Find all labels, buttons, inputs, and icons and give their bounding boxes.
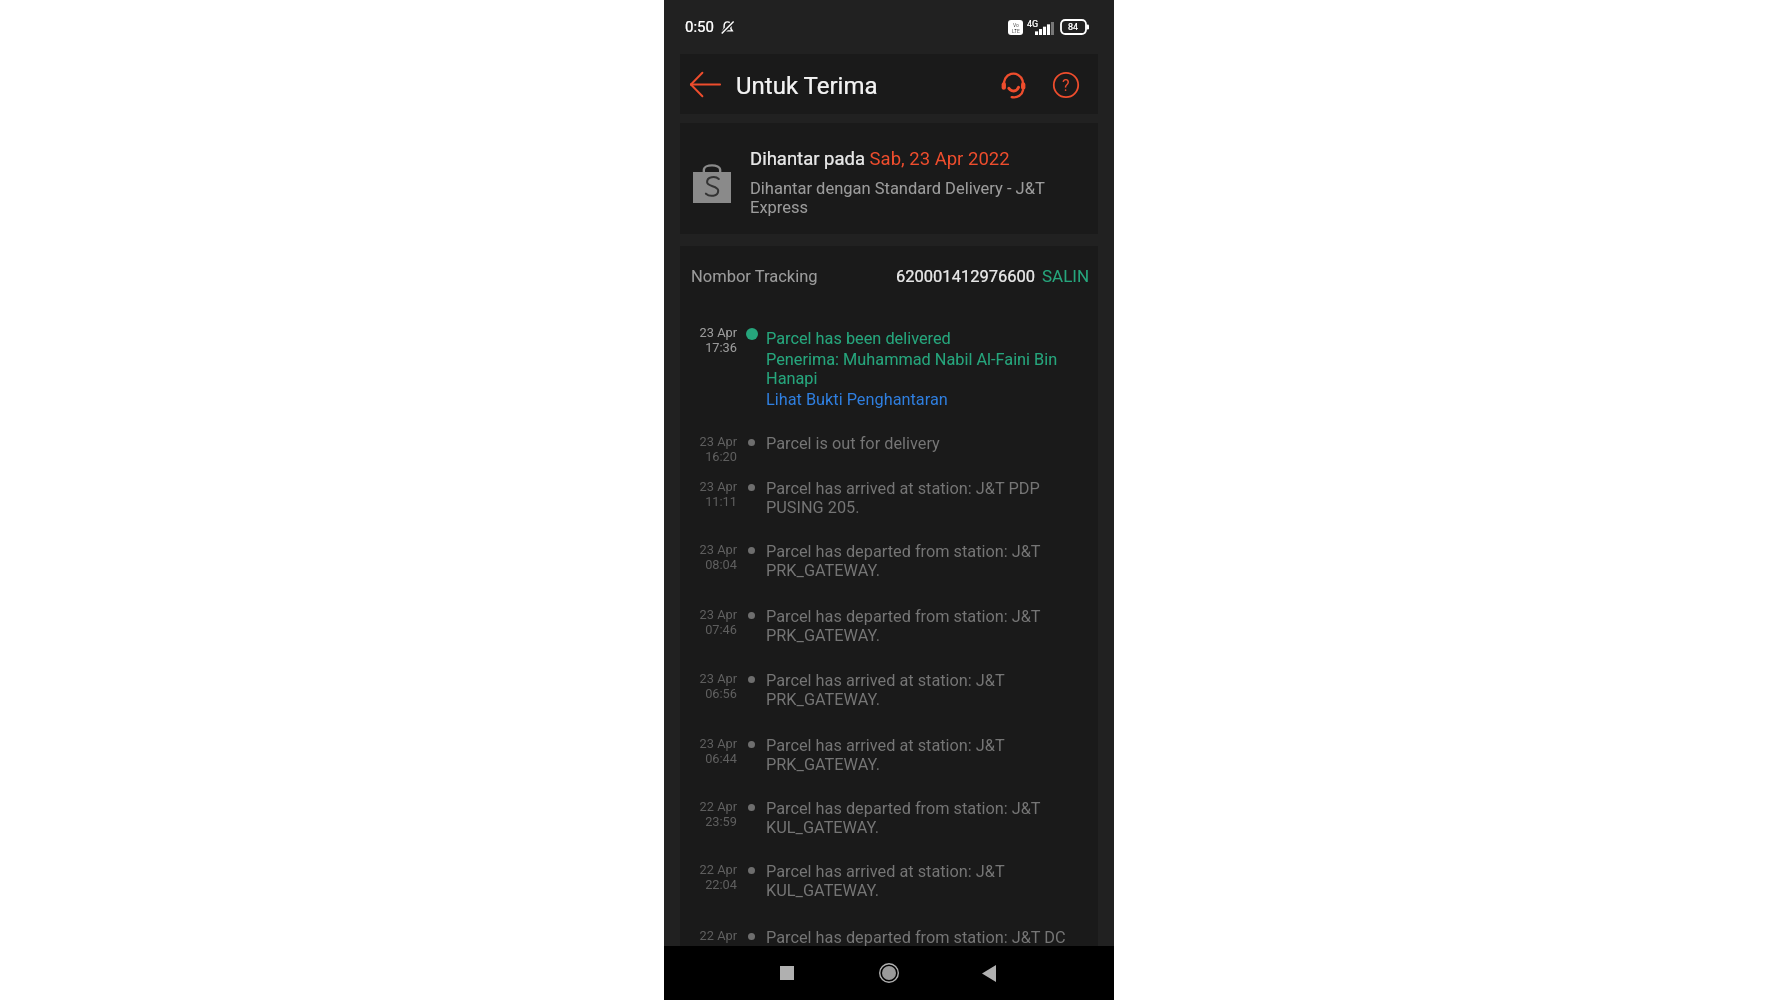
staticText: 22 Apr: [699, 862, 737, 877]
staticText: 11:11: [705, 494, 737, 509]
staticText: 23 Apr: [699, 479, 737, 494]
staticText: Dihantar dengan Standard Delivery - J&T …: [750, 179, 1092, 217]
staticText: Parcel is out for delivery: [766, 434, 940, 453]
staticText: 22 Apr: [699, 799, 737, 814]
staticText: 17:36: [705, 340, 737, 355]
staticText: 22:04: [705, 877, 737, 892]
staticText: 06:56: [705, 686, 737, 701]
staticText: Parcel has arrived at station: J&T KUL_G…: [766, 862, 1071, 900]
staticText: Vo: [1013, 22, 1019, 28]
staticText: 23:59: [705, 814, 737, 829]
staticText: ?: [1062, 76, 1070, 95]
button[interactable]: Customer chat support: [991, 63, 1035, 107]
staticText: Parcel has arrived at station: J&T PRK_G…: [766, 736, 1071, 774]
button[interactable]: Back: [965, 949, 1013, 997]
staticText: 4G: [1027, 19, 1039, 30]
staticText: Parcel has departed from station: J&T PR…: [766, 607, 1071, 645]
button[interactable]: Back: [683, 62, 727, 106]
staticText: 84: [1068, 22, 1079, 33]
staticText: 23 Apr: [699, 736, 737, 751]
staticText: Dihantar pada Sab, 23 Apr 2022: [750, 148, 1010, 170]
staticText: 23 Apr: [699, 325, 737, 340]
staticText: Penerima: Muhammad Nabil Al-Faini Bin Ha…: [766, 350, 1071, 388]
staticText: Parcel has arrived at station: J&T PDP P…: [766, 479, 1071, 517]
staticText: 620001412976600: [896, 267, 1036, 286]
staticText: 23 Apr: [699, 542, 737, 557]
staticText: Parcel has been delivered: [766, 329, 951, 348]
staticText: 06:44: [705, 751, 737, 766]
staticText: Nombor Tracking: [691, 267, 818, 286]
staticText: Parcel has departed from station: J&T PR…: [766, 542, 1071, 580]
staticText: 21:00: [705, 943, 737, 958]
staticText: Parcel has departed from station: J&T KU…: [766, 799, 1071, 837]
staticText: 0:50: [685, 18, 714, 36]
staticText: Untuk Terima: [736, 72, 878, 100]
staticText: 07:46: [705, 622, 737, 637]
staticText: 23 Apr: [699, 607, 737, 622]
button[interactable]: Home: [865, 949, 913, 997]
staticText: Lihat Bukti Penghantaran: [766, 390, 948, 409]
button[interactable]: SALIN: [1042, 266, 1090, 286]
staticText: Parcel has departed from station: J&T DC…: [766, 928, 1071, 966]
staticText: 22 Apr: [699, 928, 737, 943]
staticText: SALIN: [1042, 266, 1090, 286]
staticText: Parcel has arrived at station: J&T PRK_G…: [766, 671, 1071, 709]
staticText: 23 Apr: [699, 671, 737, 686]
button[interactable]: Lihat Bukti Penghantaran: [766, 390, 948, 409]
staticText: 16:20: [705, 449, 737, 464]
staticText: LTE: [1012, 28, 1020, 34]
button[interactable]: Help: [1044, 63, 1088, 107]
staticText: 08:04: [705, 557, 737, 572]
button[interactable]: Recent apps: [763, 949, 811, 997]
staticText: 23 Apr: [699, 434, 737, 449]
